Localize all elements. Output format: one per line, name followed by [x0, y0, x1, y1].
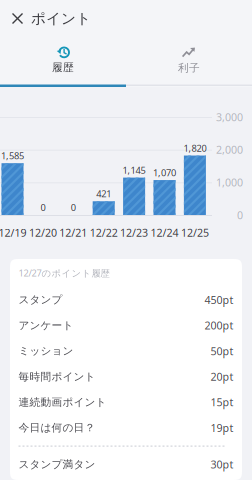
- staticText: アンケート: [18, 319, 73, 332]
- button[interactable]: 履歴: [0, 40, 126, 87]
- staticText: 1,585: [1, 149, 24, 162]
- staticText: 連続動画ポイント: [18, 396, 106, 409]
- staticText: 0: [71, 201, 76, 214]
- staticText: 0: [237, 208, 243, 222]
- button[interactable]: スタンプ: [18, 287, 233, 313]
- staticText: 12/20: [29, 225, 57, 240]
- button[interactable]: 毎時間ポイント: [18, 364, 233, 389]
- staticText: 1,820: [183, 142, 206, 154]
- staticText: ミッション: [18, 344, 73, 357]
- staticText: 12/24: [150, 225, 178, 240]
- staticText: 30pt: [210, 457, 233, 471]
- staticText: 200pt: [204, 318, 233, 332]
- staticText: 450pt: [204, 293, 233, 307]
- button[interactable]: ミッション: [18, 338, 233, 364]
- button[interactable]: 連続動画ポイント: [18, 389, 233, 415]
- button[interactable]: スタンプ満タン: [18, 452, 233, 477]
- staticText: 12/27のポイント履歴: [18, 267, 109, 279]
- staticText: スタンプ満タン: [18, 458, 95, 471]
- button[interactable]: 利子: [126, 40, 252, 87]
- staticText: 12/21: [59, 225, 87, 240]
- staticText: 12/22: [90, 225, 118, 240]
- staticText: 15pt: [210, 395, 233, 409]
- staticText: 3,000: [216, 110, 243, 124]
- staticText: 0: [40, 201, 45, 214]
- staticText: 421: [96, 188, 111, 200]
- staticText: 12/19: [0, 225, 26, 240]
- staticText: 2,000: [216, 143, 243, 157]
- staticText: 20pt: [210, 369, 233, 384]
- button[interactable]: 閉じる: [0, 0, 31, 37]
- staticText: 毎時間ポイント: [18, 370, 95, 383]
- staticText: 50pt: [210, 344, 233, 358]
- staticText: 1,000: [216, 175, 243, 189]
- button[interactable]: アンケート: [18, 313, 233, 338]
- staticText: 利子: [178, 61, 200, 75]
- staticText: 履歴: [52, 61, 74, 74]
- staticText: 今日は何の日？: [18, 421, 95, 434]
- button[interactable]: 今日は何の日？: [18, 415, 233, 441]
- staticText: 1,070: [153, 166, 176, 179]
- staticText: 12/25: [181, 225, 209, 240]
- staticText: 12/23: [120, 225, 148, 240]
- staticText: 19pt: [210, 421, 233, 435]
- staticText: 1,145: [123, 164, 146, 176]
- staticText: スタンプ: [18, 293, 62, 306]
- staticText: ポイント: [31, 9, 91, 27]
